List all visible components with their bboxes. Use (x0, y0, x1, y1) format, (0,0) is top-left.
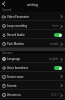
button[interactable]: Toggle (54, 33, 62, 37)
staticText: Video Parameter (7, 15, 29, 19)
staticText: Loop recording (7, 24, 27, 28)
staticText: Park Monitor (7, 42, 25, 46)
staticText: enable (50, 42, 59, 46)
staticText: Voice broadcast (7, 66, 28, 70)
staticText: Format (7, 84, 17, 88)
staticText: System (2, 51, 13, 54)
button[interactable]: Version no (0, 90, 65, 99)
button[interactable]: Toggle (54, 66, 62, 70)
button[interactable]: Language (0, 54, 65, 63)
button[interactable]: Record Audio (0, 30, 65, 39)
staticText: 1min (52, 24, 59, 28)
staticText: V1.0.1 (51, 93, 59, 97)
staticText: Record Audio (7, 33, 25, 37)
staticText: setting (27, 2, 38, 6)
staticText: english (49, 57, 59, 61)
staticText: Version no (7, 93, 21, 97)
button[interactable]: Video Parameter (0, 12, 65, 21)
button[interactable]: Back (0, 0, 8, 8)
button[interactable]: Park Monitor (0, 39, 65, 48)
staticText: Screen saver (7, 75, 24, 79)
staticText: Sound (2, 8, 12, 12)
button[interactable]: Voice broadcast (0, 63, 65, 72)
staticText: Language (7, 57, 21, 61)
button[interactable]: Screen saver (0, 72, 65, 81)
button[interactable]: Loop recording (0, 21, 65, 30)
button[interactable]: Format (0, 81, 65, 90)
